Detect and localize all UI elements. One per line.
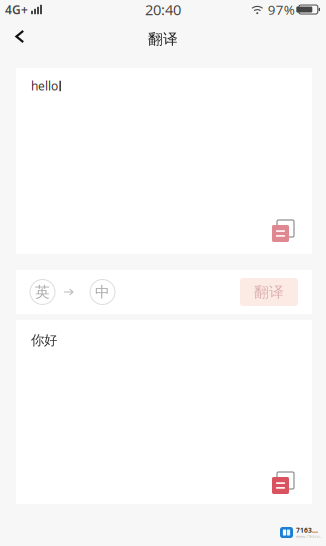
staticText: 翻译 bbox=[148, 30, 178, 48]
staticText: 4G+ bbox=[5, 1, 28, 17]
staticText: 翻译 bbox=[254, 283, 284, 301]
staticText: hello bbox=[31, 78, 58, 94]
staticText: 97% bbox=[268, 1, 295, 18]
staticText: 你好 bbox=[31, 332, 57, 348]
button[interactable]: Copy translated text bbox=[272, 472, 312, 504]
staticText: 中 bbox=[95, 283, 110, 301]
button[interactable]: Back bbox=[0, 19, 37, 53]
staticText: www.7163.com bbox=[296, 534, 322, 539]
button[interactable]: Target language Chinese bbox=[90, 279, 115, 304]
staticText: 20:40 bbox=[145, 0, 181, 19]
button[interactable]: 翻译 bbox=[240, 278, 298, 306]
button[interactable]: Source language English bbox=[30, 279, 55, 304]
button[interactable]: Copy source text bbox=[272, 220, 312, 254]
staticText: 英 bbox=[35, 283, 50, 301]
staticText: 7163手游网 bbox=[296, 526, 322, 535]
